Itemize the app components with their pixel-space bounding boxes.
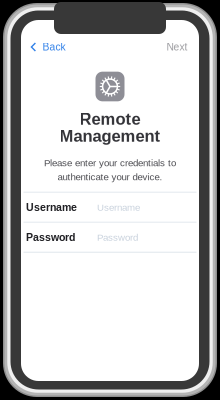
button[interactable]: Password (21, 223, 199, 252)
staticText: authenticate your device. (57, 172, 162, 182)
staticText: Please enter your credentials to (44, 158, 176, 168)
staticText: Back (42, 41, 65, 53)
button[interactable]: Username (21, 193, 199, 222)
staticText: Next (166, 41, 187, 53)
staticText: Management (59, 127, 160, 145)
button[interactable]: Next (158, 34, 197, 60)
staticText: Username (26, 201, 77, 213)
staticText: Password (26, 231, 75, 243)
staticText: Username (97, 202, 140, 213)
staticText: Password (97, 232, 138, 243)
button[interactable]: Back (21, 34, 71, 60)
staticText: Remote (79, 110, 140, 128)
